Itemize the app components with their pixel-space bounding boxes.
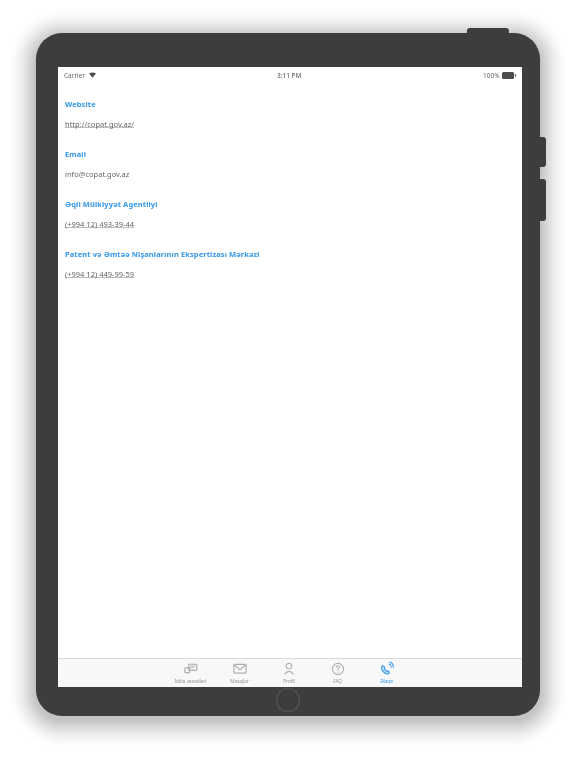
- staticText: Patent və Əmtəə Nişanlarının Ekspertizas…: [65, 249, 260, 259]
- staticText: FAQ: [333, 678, 342, 684]
- staticText: Carrier: [64, 71, 86, 80]
- staticText: info@copat.gov.az: [65, 169, 130, 179]
- button[interactable]: İddia sənədləri: [166, 659, 215, 687]
- button[interactable]: FAQ: [313, 659, 362, 687]
- button[interactable]: Website: [65, 99, 512, 129]
- button[interactable]: Email: [65, 149, 512, 179]
- button[interactable]: Mesajlar: [215, 659, 264, 687]
- staticText: Website: [65, 99, 96, 109]
- button[interactable]: Patent və Əmtəə Nişanlarının Ekspertizas…: [65, 249, 512, 279]
- staticText: Əqli Mülkiyyət Agentliyi: [65, 199, 158, 209]
- staticText: (+994 12) 493-39-44: [65, 219, 134, 229]
- button[interactable]: Əqli Mülkiyyət Agentliyi: [65, 199, 512, 229]
- staticText: 100%: [483, 71, 500, 80]
- staticText: 3:11 PM: [277, 71, 302, 80]
- button[interactable]: Profil: [264, 659, 313, 687]
- staticText: Əlaqə: [380, 678, 393, 684]
- staticText: Mesajlar: [230, 678, 249, 684]
- button[interactable]: Əlaqə: [362, 659, 411, 687]
- staticText: (+994 12) 449-99-59: [65, 269, 134, 279]
- staticText: İddia sənədləri: [174, 678, 207, 684]
- staticText: http://copat.gov.az/: [65, 119, 134, 129]
- staticText: Profil: [283, 678, 295, 684]
- staticText: Email: [65, 149, 86, 159]
